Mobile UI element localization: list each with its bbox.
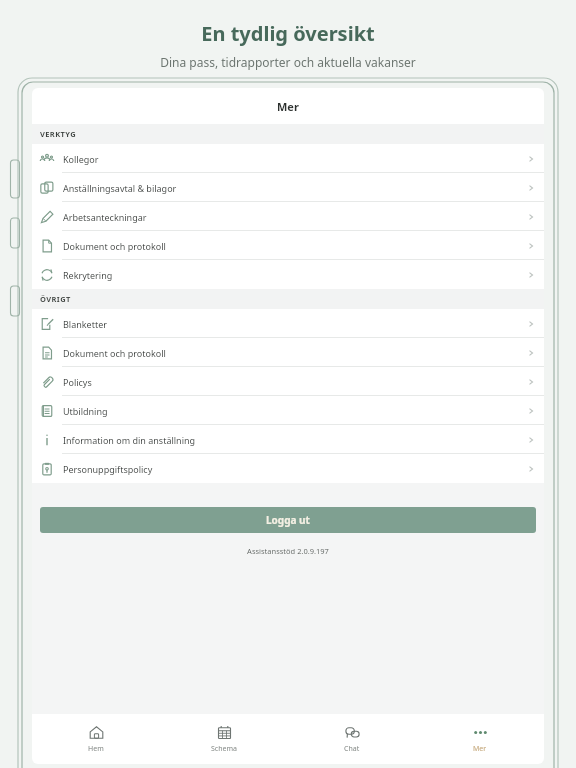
button[interactable]: Kollegor <box>32 144 544 173</box>
staticText: En tydlig översikt <box>0 20 576 47</box>
staticText: Information om din anställning <box>63 434 196 446</box>
button[interactable]: Policys <box>32 367 544 396</box>
button[interactable]: Blanketter <box>32 309 544 338</box>
button[interactable]: Dokument och protokoll <box>32 231 544 260</box>
staticText: Assistansstöd 2.0.9.197 <box>32 546 544 556</box>
staticText: Anställningsavtal & bilagor <box>63 182 177 194</box>
staticText: VERKTYG <box>40 129 77 139</box>
button[interactable]: Schema <box>160 714 288 764</box>
staticText: Dina pass, tidrapporter och aktuella vak… <box>0 54 576 70</box>
button[interactable]: Rekrytering <box>32 260 544 289</box>
button[interactable]: Utbildning <box>32 396 544 425</box>
button[interactable]: Hem <box>32 714 160 764</box>
staticText: Dokument och protokoll <box>63 240 166 252</box>
button[interactable]: Personuppgiftspolicy <box>32 454 544 483</box>
staticText: Mer <box>277 99 299 114</box>
staticText: Logga ut <box>266 513 310 527</box>
staticText: Rekrytering <box>63 269 113 281</box>
button[interactable]: Anställningsavtal & bilagor <box>32 173 544 202</box>
staticText: Hem <box>88 744 104 754</box>
staticText: Schema <box>211 744 237 754</box>
staticText: ÖVRIGT <box>40 294 71 304</box>
button[interactable]: Logga ut <box>40 507 536 533</box>
staticText: Chat <box>344 744 360 754</box>
staticText: Policys <box>63 376 92 388</box>
staticText: Arbetsanteckningar <box>63 211 147 223</box>
button[interactable]: Information om din anställning <box>32 425 544 454</box>
staticText: Dokument och protokoll <box>63 347 166 359</box>
staticText: Kollegor <box>63 153 99 165</box>
staticText: Personuppgiftspolicy <box>63 463 153 475</box>
button[interactable]: Dokument och protokoll <box>32 338 544 367</box>
button[interactable]: Arbetsanteckningar <box>32 202 544 231</box>
button[interactable]: Mer <box>416 714 544 764</box>
staticText: Utbildning <box>63 405 108 417</box>
button[interactable]: Chat <box>288 714 416 764</box>
staticText: Blanketter <box>63 318 107 330</box>
staticText: Mer <box>473 744 487 754</box>
